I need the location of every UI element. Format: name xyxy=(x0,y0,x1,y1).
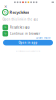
button[interactable]: ↻ xyxy=(0,24,56,30)
button[interactable]: Open in app xyxy=(3,40,53,45)
staticText: ↻ xyxy=(4,10,7,14)
staticText: Learn more xyxy=(36,36,51,40)
staticText: Continue in browser xyxy=(10,32,40,35)
button[interactable]: Learn more xyxy=(36,36,51,40)
staticText: Recyclekes app xyxy=(10,26,30,29)
staticText: Open this link in the app xyxy=(2,18,38,21)
staticText: By continuing you agree to the Terms xyxy=(15,50,40,52)
staticText: ↻ xyxy=(4,32,6,35)
button[interactable]: ↻ xyxy=(0,30,56,37)
button[interactable]: Close xyxy=(2,4,9,8)
staticText: ✕ xyxy=(4,4,7,9)
staticText: Recyclekes xyxy=(9,10,29,15)
staticText: ↻ xyxy=(4,26,6,29)
staticText: Open in app xyxy=(18,41,37,44)
